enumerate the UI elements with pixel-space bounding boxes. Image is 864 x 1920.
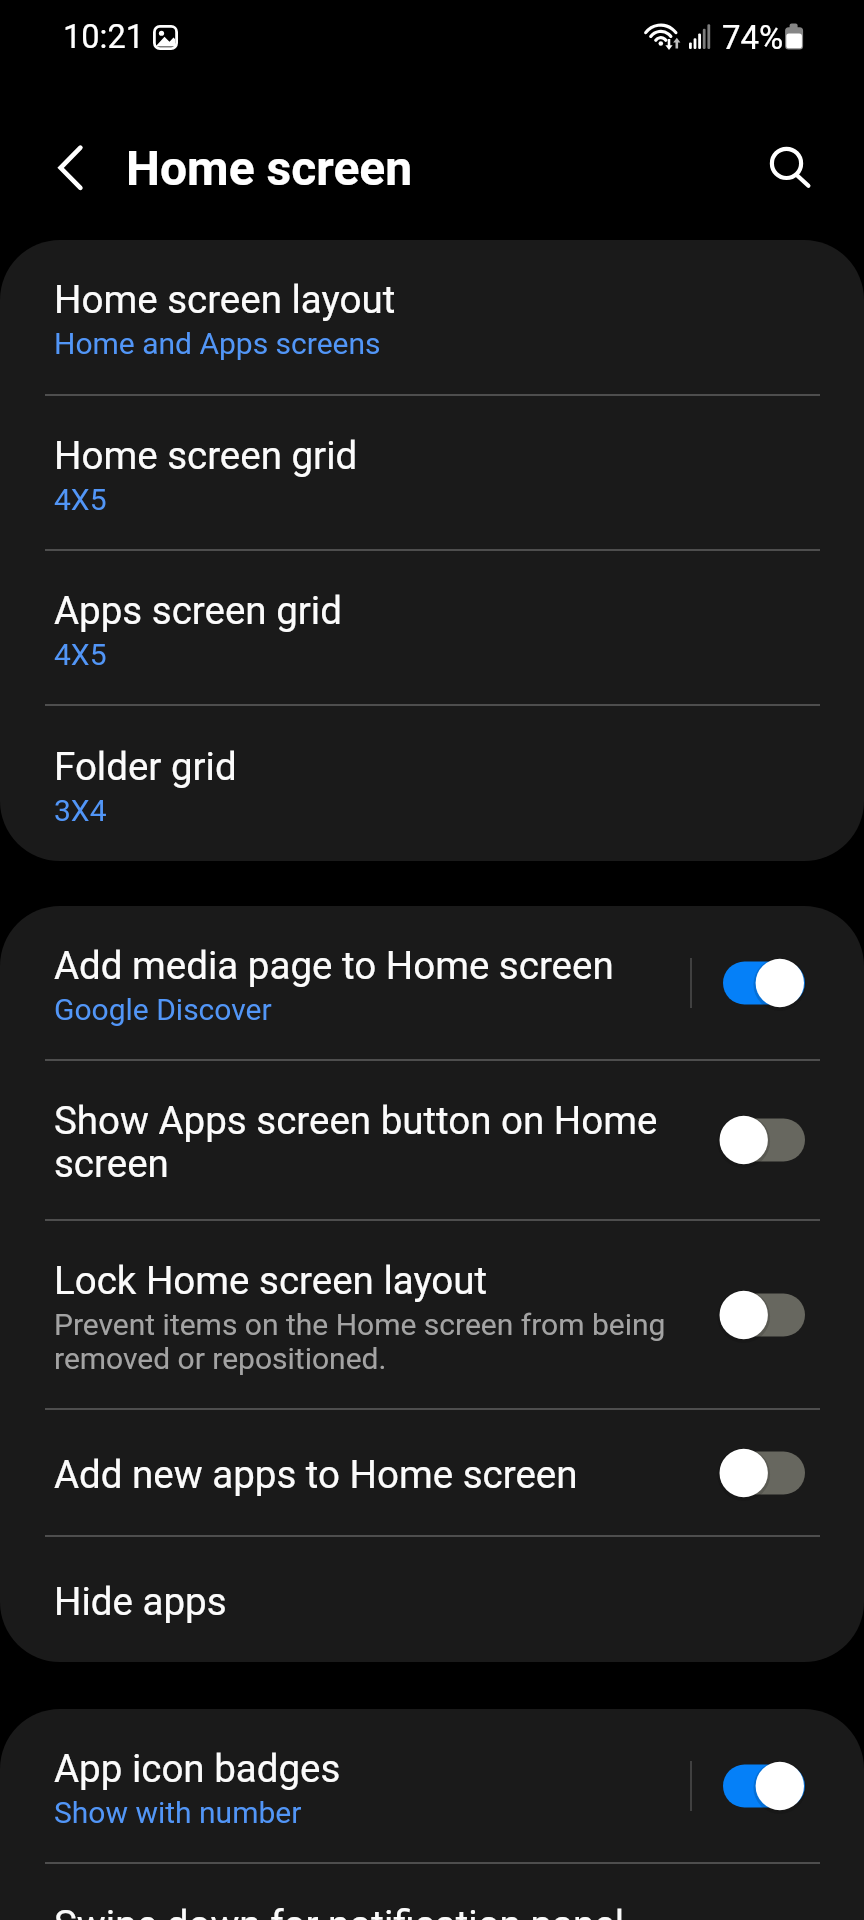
staticText: Add media page to Home screen [54,945,614,988]
staticText: Home screen layout [54,279,396,322]
staticText: Prevent items on the Home screen from be… [54,1308,679,1376]
button[interactable]: Switch off [714,1061,814,1219]
button[interactable]: Folder grid [0,706,864,861]
staticText: Swipe down for notification panel [54,1904,625,1920]
button[interactable]: Switch off [714,1221,814,1408]
staticText: Add new apps to Home screen [54,1454,578,1497]
staticText: Lock Home screen layout [54,1260,488,1303]
button[interactable]: Home screen layout [0,240,864,394]
staticText: 10:21 [63,21,144,55]
staticText: Folder grid [54,746,237,789]
button[interactable]: Show Apps screen button on Home screen [0,1061,864,1219]
button[interactable]: Lock Home screen layout [0,1221,864,1408]
button[interactable]: Add media page to Home screen [0,906,864,1059]
button[interactable]: Apps screen grid [0,551,864,704]
button[interactable]: Add new apps to Home screen [0,1410,864,1535]
staticText: 3X4 [54,794,107,828]
staticText: 4X5 [54,483,107,517]
staticText: Home screen grid [54,435,358,478]
staticText: Home screen [126,145,413,196]
staticText: 74% [722,21,784,56]
staticText: 4X5 [54,638,107,672]
staticText: Apps screen grid [54,590,342,633]
button[interactable]: Switch off [714,1410,814,1535]
button[interactable]: Swipe down for notification panel [0,1864,864,1920]
button[interactable]: Switch on [714,1709,814,1862]
staticText: App icon badges [54,1748,341,1791]
staticText: Show Apps screen button on Home screen [54,1100,679,1186]
staticText: Google Discover [54,993,272,1027]
button[interactable]: Home screen grid [0,396,864,549]
button[interactable]: App icon badges [0,1709,864,1862]
button[interactable]: Hide apps [0,1537,864,1662]
button[interactable]: Search [752,129,822,199]
staticText: Home and Apps screens [54,327,381,361]
staticText: Show with number [54,1796,302,1830]
staticText: Hide apps [54,1581,227,1624]
button[interactable]: Navigate up [36,134,106,204]
button[interactable]: Switch on [714,906,814,1059]
